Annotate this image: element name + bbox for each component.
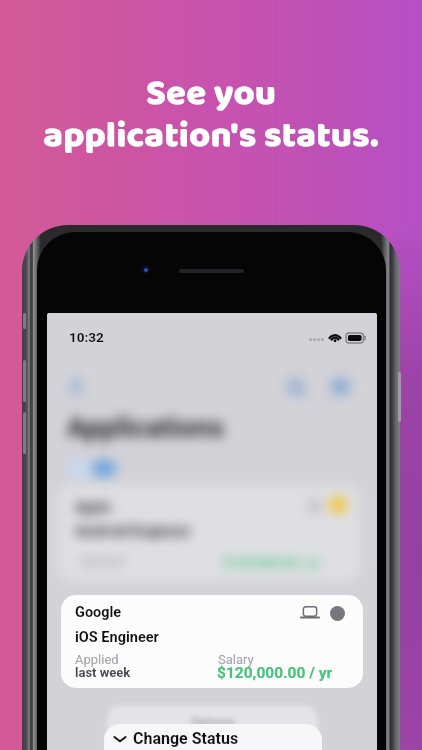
staticText: Change Status bbox=[133, 729, 239, 748]
staticText: iOS Engineer bbox=[75, 629, 159, 646]
staticText: $120,000.00 / yr bbox=[217, 664, 333, 682]
staticText: Android Engineer bbox=[75, 522, 192, 540]
button[interactable]: Change Status bbox=[104, 724, 322, 750]
staticText: Salary bbox=[218, 652, 254, 667]
staticText: Applications bbox=[67, 411, 225, 444]
staticText: $155,000.00 / yr bbox=[223, 555, 320, 570]
staticText: Google bbox=[75, 604, 122, 621]
staticText: 10:32 bbox=[69, 329, 104, 345]
staticText: Apple bbox=[75, 499, 112, 515]
staticText: See you application's status. bbox=[0, 65, 422, 165]
staticText: Options bbox=[191, 714, 235, 729]
button[interactable]: Google bbox=[61, 595, 363, 688]
staticText: last week bbox=[75, 665, 131, 680]
button[interactable]: Options bbox=[107, 705, 318, 750]
other: Remote job bbox=[301, 606, 319, 619]
staticText: Applied bbox=[75, 652, 119, 667]
